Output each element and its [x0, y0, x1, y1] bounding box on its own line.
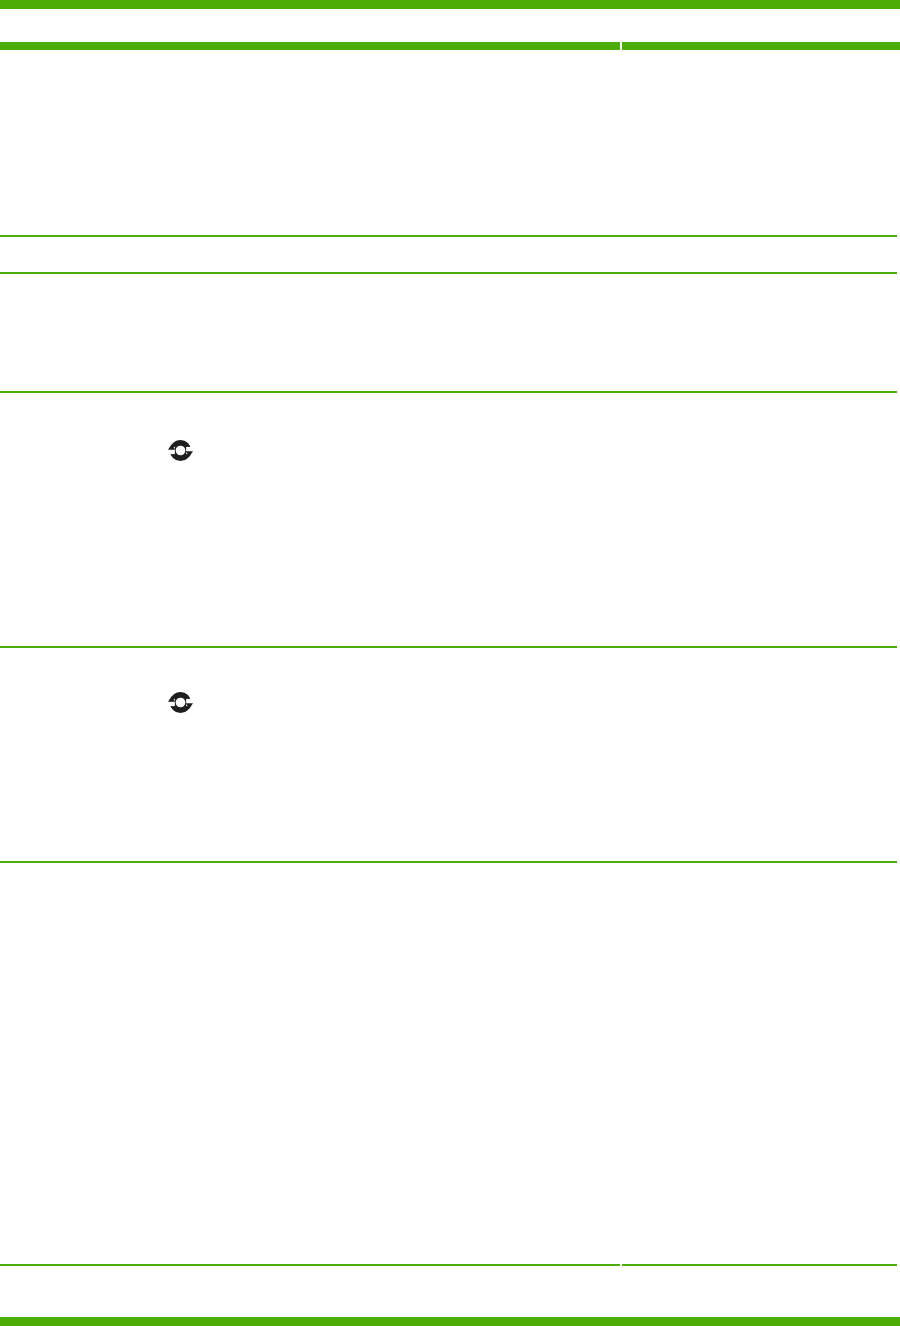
button[interactable]: Refresh [165, 687, 196, 718]
button[interactable]: Refresh [165, 435, 196, 466]
